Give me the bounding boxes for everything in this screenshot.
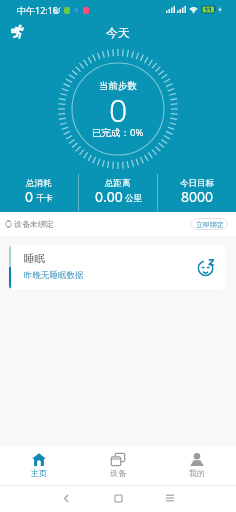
staticText: 我的 bbox=[189, 468, 205, 478]
staticText: 昨晚无睡眠数据 bbox=[24, 270, 84, 281]
staticText: 8000 bbox=[181, 187, 214, 206]
button[interactable]: 主页 bbox=[0, 446, 78, 485]
staticText: 今天 bbox=[106, 25, 130, 40]
button[interactable]: 我的 bbox=[157, 446, 236, 485]
staticText: 立即绑定 bbox=[196, 220, 224, 229]
button[interactable]: 总距离 bbox=[79, 174, 157, 211]
staticText: 0 bbox=[109, 88, 128, 132]
button[interactable]: Back bbox=[54, 486, 78, 510]
staticText: 睡眠 bbox=[24, 252, 45, 265]
button[interactable]: Exercise bbox=[5, 19, 29, 43]
button[interactable]: Recents bbox=[158, 486, 182, 510]
button[interactable]: 总消耗 bbox=[0, 174, 78, 211]
button[interactable]: 设备 bbox=[78, 446, 157, 485]
staticText: 设备 bbox=[110, 468, 126, 478]
staticText: 总消耗 bbox=[26, 178, 52, 189]
staticText: 0.00 bbox=[95, 187, 123, 206]
button[interactable]: Home bbox=[106, 486, 130, 510]
staticText: 主页 bbox=[31, 468, 47, 478]
staticText: 公里 bbox=[125, 193, 142, 204]
staticText: 中午12:16 bbox=[17, 4, 59, 16]
staticText: 设备未绑定 bbox=[14, 219, 54, 229]
staticText: 千卡 bbox=[36, 193, 53, 204]
staticText: 已完成：0% bbox=[92, 126, 144, 139]
staticText: 当前步数 bbox=[99, 80, 137, 92]
button[interactable]: 睡眠 bbox=[9, 245, 226, 289]
staticText: 总距离 bbox=[105, 178, 131, 189]
staticText: 今日目标 bbox=[180, 178, 214, 189]
button[interactable]: 今日目标 bbox=[158, 174, 236, 211]
staticText: 0 bbox=[25, 187, 34, 206]
button[interactable]: 立即绑定 bbox=[191, 218, 228, 230]
